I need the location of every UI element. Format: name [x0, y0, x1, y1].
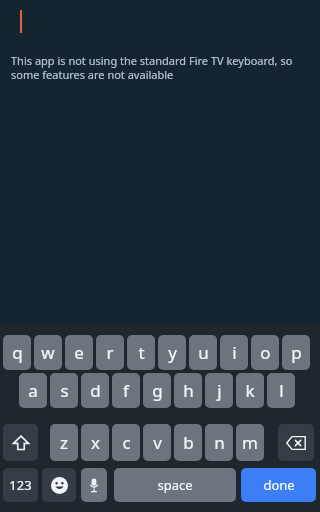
button[interactable]: h — [174, 373, 202, 408]
button[interactable]: m — [236, 424, 264, 461]
staticText: m — [242, 431, 258, 454]
staticText: 123 — [9, 476, 32, 494]
staticText: This app is not using the standard Fire … — [11, 53, 309, 82]
button[interactable]: v — [143, 424, 171, 461]
button[interactable]: y — [158, 335, 186, 370]
button[interactable]: a — [19, 373, 47, 408]
button[interactable]: w — [34, 335, 62, 370]
button[interactable]: p — [282, 335, 310, 370]
staticText: x — [91, 431, 100, 454]
button[interactable]: k — [236, 373, 264, 408]
staticText: d — [90, 379, 101, 402]
button[interactable]: f — [112, 373, 140, 408]
button[interactable]: q — [3, 335, 31, 370]
button[interactable]: Emoji — [42, 468, 76, 502]
staticText: k — [245, 379, 255, 402]
staticText: c — [122, 431, 131, 454]
staticText: b — [183, 431, 194, 454]
staticText: i — [232, 341, 237, 364]
button[interactable]: c — [112, 424, 140, 461]
staticText: p — [291, 341, 302, 364]
staticText: s — [60, 379, 69, 402]
button[interactable]: Backspace — [278, 424, 314, 461]
button[interactable]: x — [81, 424, 109, 461]
staticText: y — [168, 341, 177, 364]
button[interactable]: g — [143, 373, 171, 408]
button[interactable]: s — [50, 373, 78, 408]
button[interactable]: j — [205, 373, 233, 408]
staticText: v — [153, 431, 162, 454]
staticText: g — [152, 379, 163, 402]
button[interactable]: Voice input — [81, 468, 107, 502]
button[interactable]: Shift — [3, 424, 38, 461]
button[interactable]: l — [267, 373, 295, 408]
staticText: r — [106, 341, 114, 364]
button[interactable]: e — [65, 335, 93, 370]
button[interactable]: r — [96, 335, 124, 370]
staticText: l — [279, 379, 284, 402]
staticText: h — [183, 379, 194, 402]
button[interactable]: d — [81, 373, 109, 408]
staticText: e — [74, 341, 84, 364]
button[interactable]: o — [251, 335, 279, 370]
staticText: u — [198, 341, 209, 364]
button[interactable]: 123 — [3, 468, 38, 502]
staticText: w — [41, 341, 55, 364]
staticText: space — [157, 476, 193, 494]
button[interactable]: i — [220, 335, 248, 370]
button[interactable]: done — [241, 468, 316, 502]
staticText: done — [263, 476, 295, 494]
staticText: f — [123, 379, 129, 402]
staticText: n — [214, 431, 225, 454]
button[interactable]: space — [114, 468, 236, 502]
button[interactable]: b — [174, 424, 202, 461]
staticText: z — [60, 431, 68, 454]
staticText: a — [28, 379, 38, 402]
staticText: t — [138, 341, 145, 364]
staticText: j — [217, 379, 222, 402]
staticText: o — [260, 341, 271, 364]
button[interactable]: z — [50, 424, 78, 461]
button[interactable]: n — [205, 424, 233, 461]
button[interactable]: t — [127, 335, 155, 370]
staticText: q — [12, 341, 23, 364]
button[interactable]: u — [189, 335, 217, 370]
